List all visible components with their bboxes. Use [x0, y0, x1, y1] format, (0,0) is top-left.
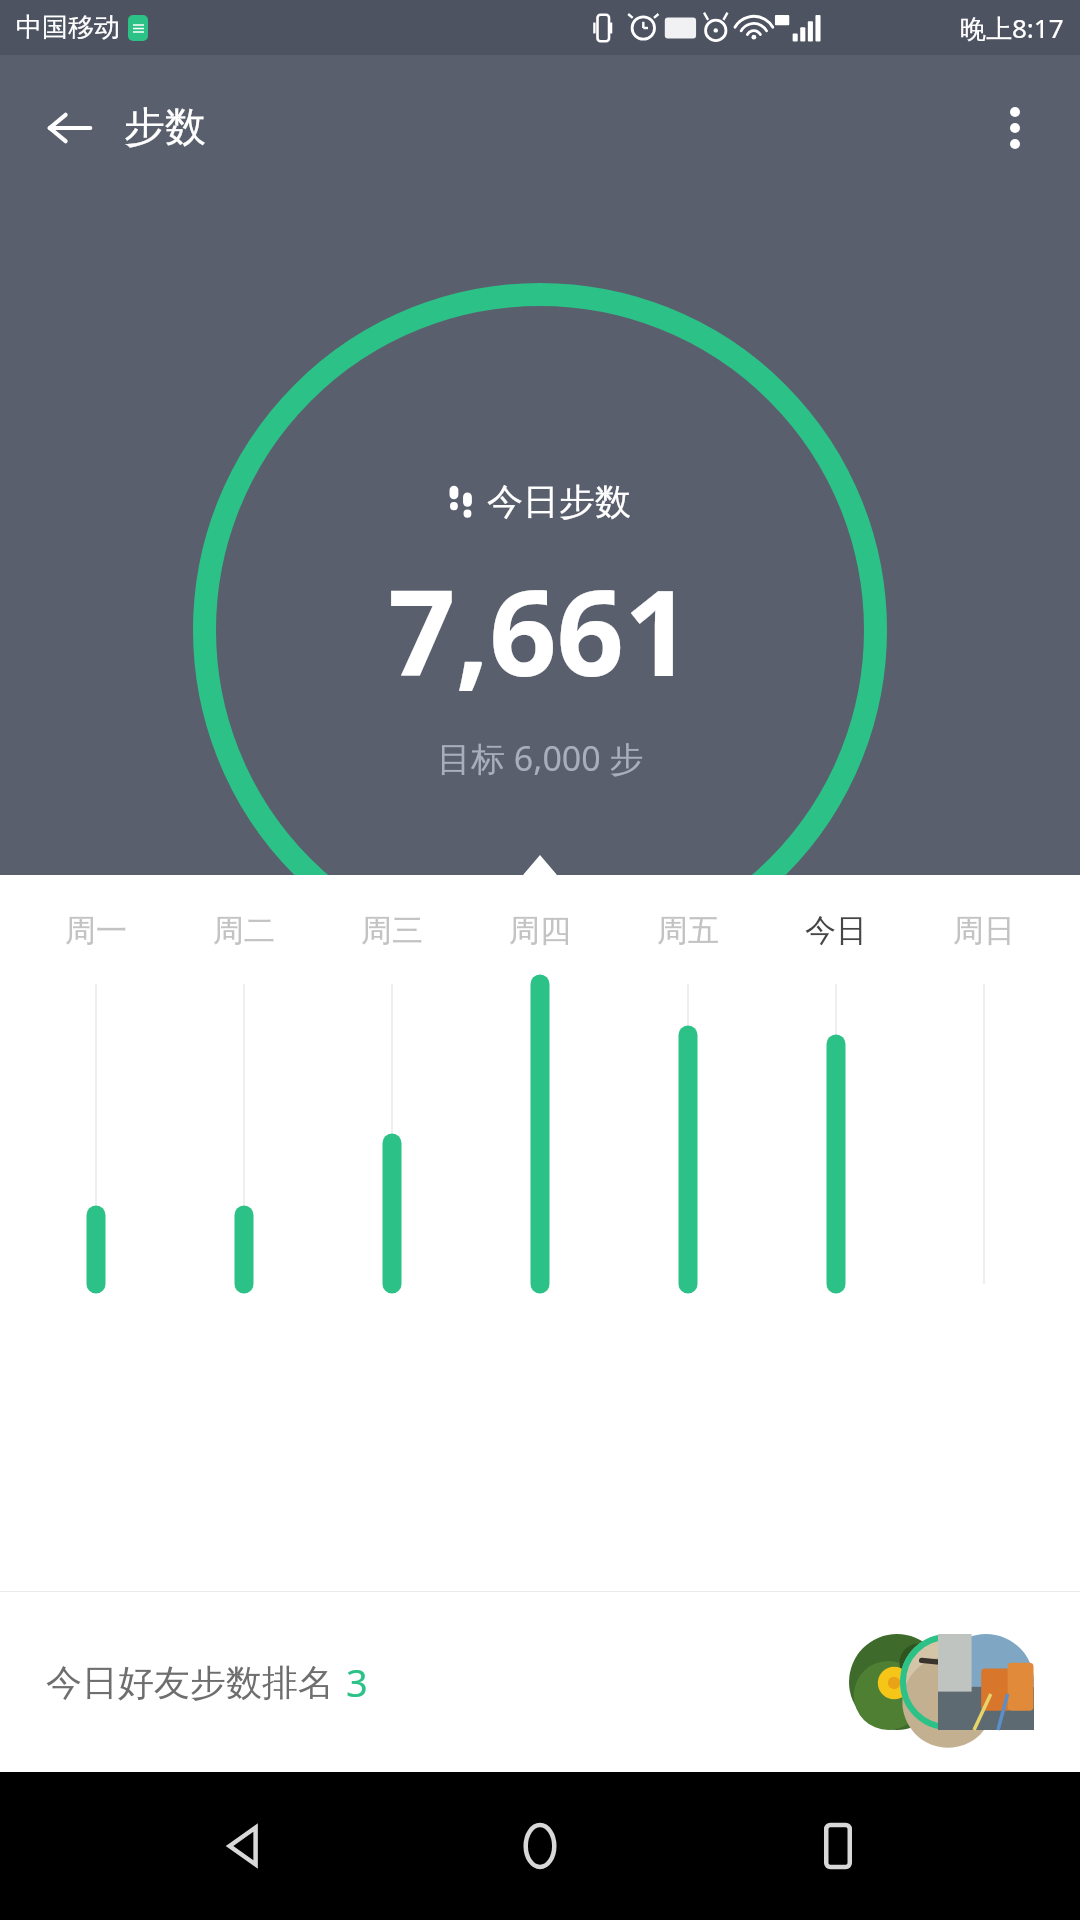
staticText: 步数	[124, 102, 206, 154]
staticText: 晚上8:17	[960, 10, 1064, 46]
staticText: 周四	[509, 911, 571, 950]
staticText: 周二	[213, 911, 275, 950]
staticText: 今日步数	[487, 479, 631, 524]
button[interactable]: 今日好友步数排名	[0, 1592, 1080, 1772]
staticText: 中国移动	[16, 11, 120, 44]
staticText: 今日好友步数排名	[46, 1660, 334, 1705]
button[interactable]: Back	[40, 98, 100, 158]
button[interactable]: Recents	[783, 1791, 893, 1901]
staticText: 周三	[361, 911, 423, 950]
staticText: 周日	[953, 911, 1015, 950]
staticText: 目标 6,000 步	[437, 735, 644, 781]
staticText: 周五	[657, 911, 719, 950]
button[interactable]: More options	[980, 93, 1050, 163]
staticText: 周一	[65, 911, 127, 950]
button[interactable]: Home	[485, 1791, 595, 1901]
staticText: 今日	[805, 911, 867, 950]
staticText: 7,661	[388, 550, 692, 711]
button[interactable]: Back	[188, 1791, 298, 1901]
staticText: 3	[346, 1656, 368, 1708]
